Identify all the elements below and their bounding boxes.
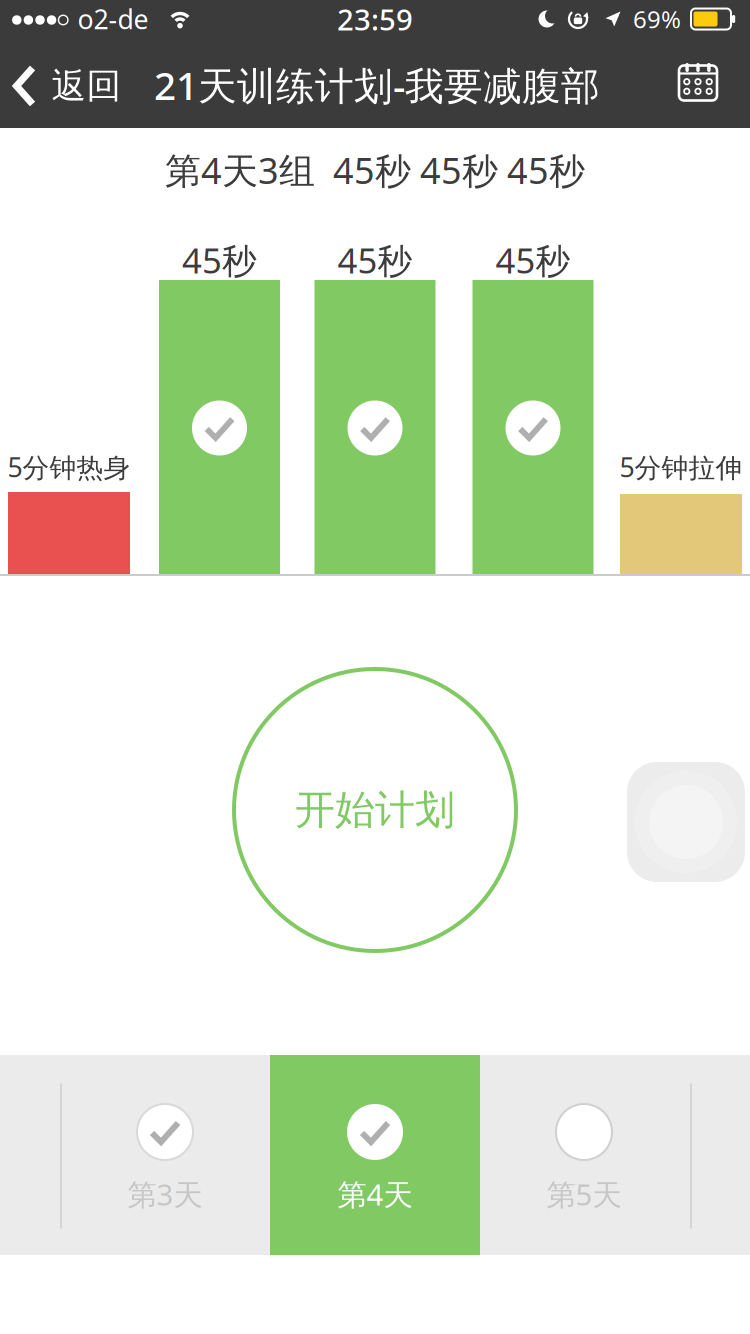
staticText: 5分钟热身	[7, 449, 130, 485]
button[interactable]	[676, 61, 720, 105]
button[interactable]: 返回	[12, 56, 121, 116]
staticText: 5分钟拉伸	[619, 449, 742, 485]
staticText: 第4天	[337, 1174, 412, 1213]
staticText: o2-de	[77, 1, 148, 37]
staticText: 21天训练计划-我要减腹部	[154, 59, 600, 111]
button[interactable]: 第5天	[479, 1055, 689, 1255]
staticText: 开始计划	[295, 785, 455, 834]
staticText: 第5天	[546, 1174, 621, 1213]
staticText: 69%	[633, 3, 681, 35]
button[interactable]: 第4天	[270, 1055, 480, 1255]
staticText: 23:59	[337, 0, 413, 38]
staticText: 45秒	[182, 237, 257, 283]
staticText: 第3天	[127, 1174, 202, 1213]
staticText: 45秒	[337, 237, 412, 283]
staticText: 返回	[51, 65, 121, 107]
staticText: 45秒	[495, 237, 570, 283]
button[interactable]: 第3天	[60, 1055, 270, 1255]
staticText: 第4天3组 45秒 45秒 45秒	[165, 146, 585, 194]
button[interactable]: 开始计划	[234, 669, 516, 951]
button[interactable]	[627, 762, 745, 882]
